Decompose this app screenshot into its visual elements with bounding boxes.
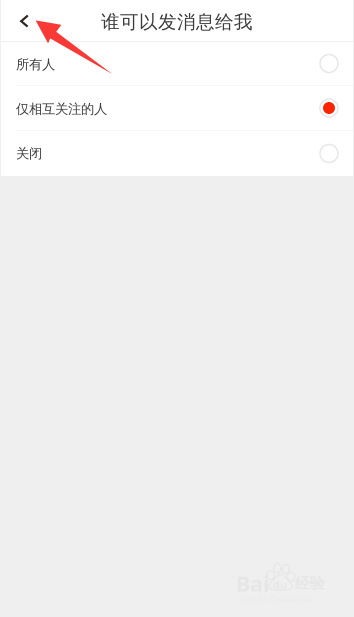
button[interactable]: 关闭 <box>1 131 353 176</box>
staticText: 经验 <box>295 574 325 593</box>
button[interactable]: 所有人 <box>1 42 353 86</box>
staticText: du <box>273 577 287 592</box>
button[interactable]: Back <box>1 0 45 41</box>
staticText: 所有人 <box>16 56 55 73</box>
staticText: 谁可以发消息给我 <box>101 10 253 34</box>
staticText: 仅相互关注的人 <box>16 101 107 117</box>
staticText: Bai <box>236 569 269 598</box>
staticText: 关闭 <box>16 145 42 162</box>
button[interactable]: 仅相互关注的人 <box>1 86 353 131</box>
